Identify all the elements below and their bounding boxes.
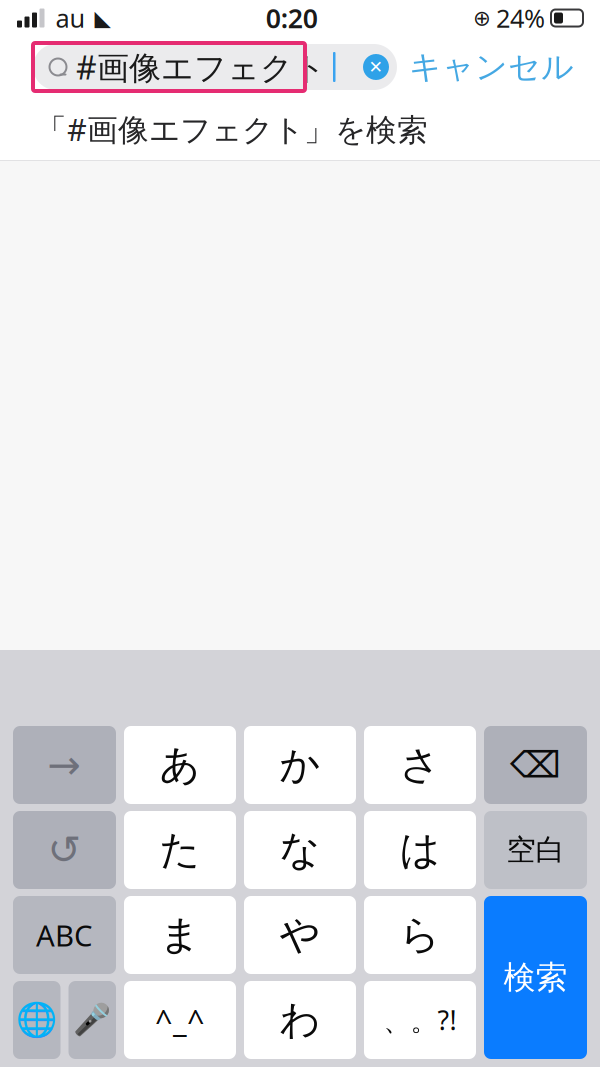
button[interactable]: Search xyxy=(484,896,587,1059)
button[interactable]: Punctuation xyxy=(364,981,476,1059)
button[interactable]: さ xyxy=(364,726,476,804)
staticText: 「#画像エフェクト」を検索 xyxy=(36,109,428,149)
button[interactable]: Clear text xyxy=(355,44,397,90)
button[interactable]: Delete xyxy=(484,726,587,804)
button[interactable]: 「#画像エフェクト」を検索 xyxy=(0,98,600,160)
staticText: ↺ xyxy=(47,827,81,873)
staticText: は xyxy=(399,825,440,874)
staticText: ABC xyxy=(36,915,93,954)
staticText: キャンセル xyxy=(409,47,574,87)
button[interactable]: た xyxy=(124,811,236,889)
staticText: 、。?! xyxy=(383,1002,456,1038)
staticText: や xyxy=(279,910,320,959)
staticText: 🎤 xyxy=(73,1002,111,1037)
button[interactable]: Dictation xyxy=(68,981,116,1059)
staticText: か xyxy=(279,740,320,789)
staticText: 0:20 xyxy=(266,0,318,36)
staticText: 🌐 xyxy=(16,1001,58,1039)
button[interactable]: Space xyxy=(484,811,587,889)
button[interactable]: Emoticons xyxy=(124,981,236,1059)
staticText: 検索 xyxy=(503,958,567,997)
staticText: ま xyxy=(159,910,200,959)
button[interactable]: や xyxy=(244,896,356,974)
staticText: な xyxy=(279,825,320,874)
button[interactable]: あ xyxy=(124,726,236,804)
staticText: さ xyxy=(399,740,440,789)
button[interactable]: は xyxy=(364,811,476,889)
staticText: ら xyxy=(399,910,440,959)
button[interactable]: ら xyxy=(364,896,476,974)
button[interactable]: Switch keyboard xyxy=(13,981,60,1059)
staticText: ✕ xyxy=(368,57,383,77)
staticText: あ xyxy=(159,740,200,789)
staticText: → xyxy=(47,742,81,788)
staticText: ◣ xyxy=(94,6,110,30)
staticText: わ xyxy=(279,995,320,1044)
button[interactable]: ま xyxy=(124,896,236,974)
staticText: 空白 xyxy=(506,832,564,868)
staticText: ⊕ xyxy=(473,6,491,30)
button[interactable]: Undo xyxy=(13,811,116,889)
staticText: au xyxy=(55,1,85,35)
button[interactable]: か xyxy=(244,726,356,804)
button[interactable]: な xyxy=(244,811,356,889)
button[interactable]: キャンセル xyxy=(397,44,586,90)
button[interactable]: Next candidate xyxy=(13,726,116,804)
staticText: #画像エフェクト xyxy=(76,46,326,88)
staticText: ^_^ xyxy=(155,1000,205,1040)
button[interactable]: ABC xyxy=(13,896,116,974)
button[interactable]: わ xyxy=(244,981,356,1059)
staticText: ⌫ xyxy=(510,745,561,785)
staticText: た xyxy=(159,825,200,874)
staticText: 24% xyxy=(496,1,545,35)
